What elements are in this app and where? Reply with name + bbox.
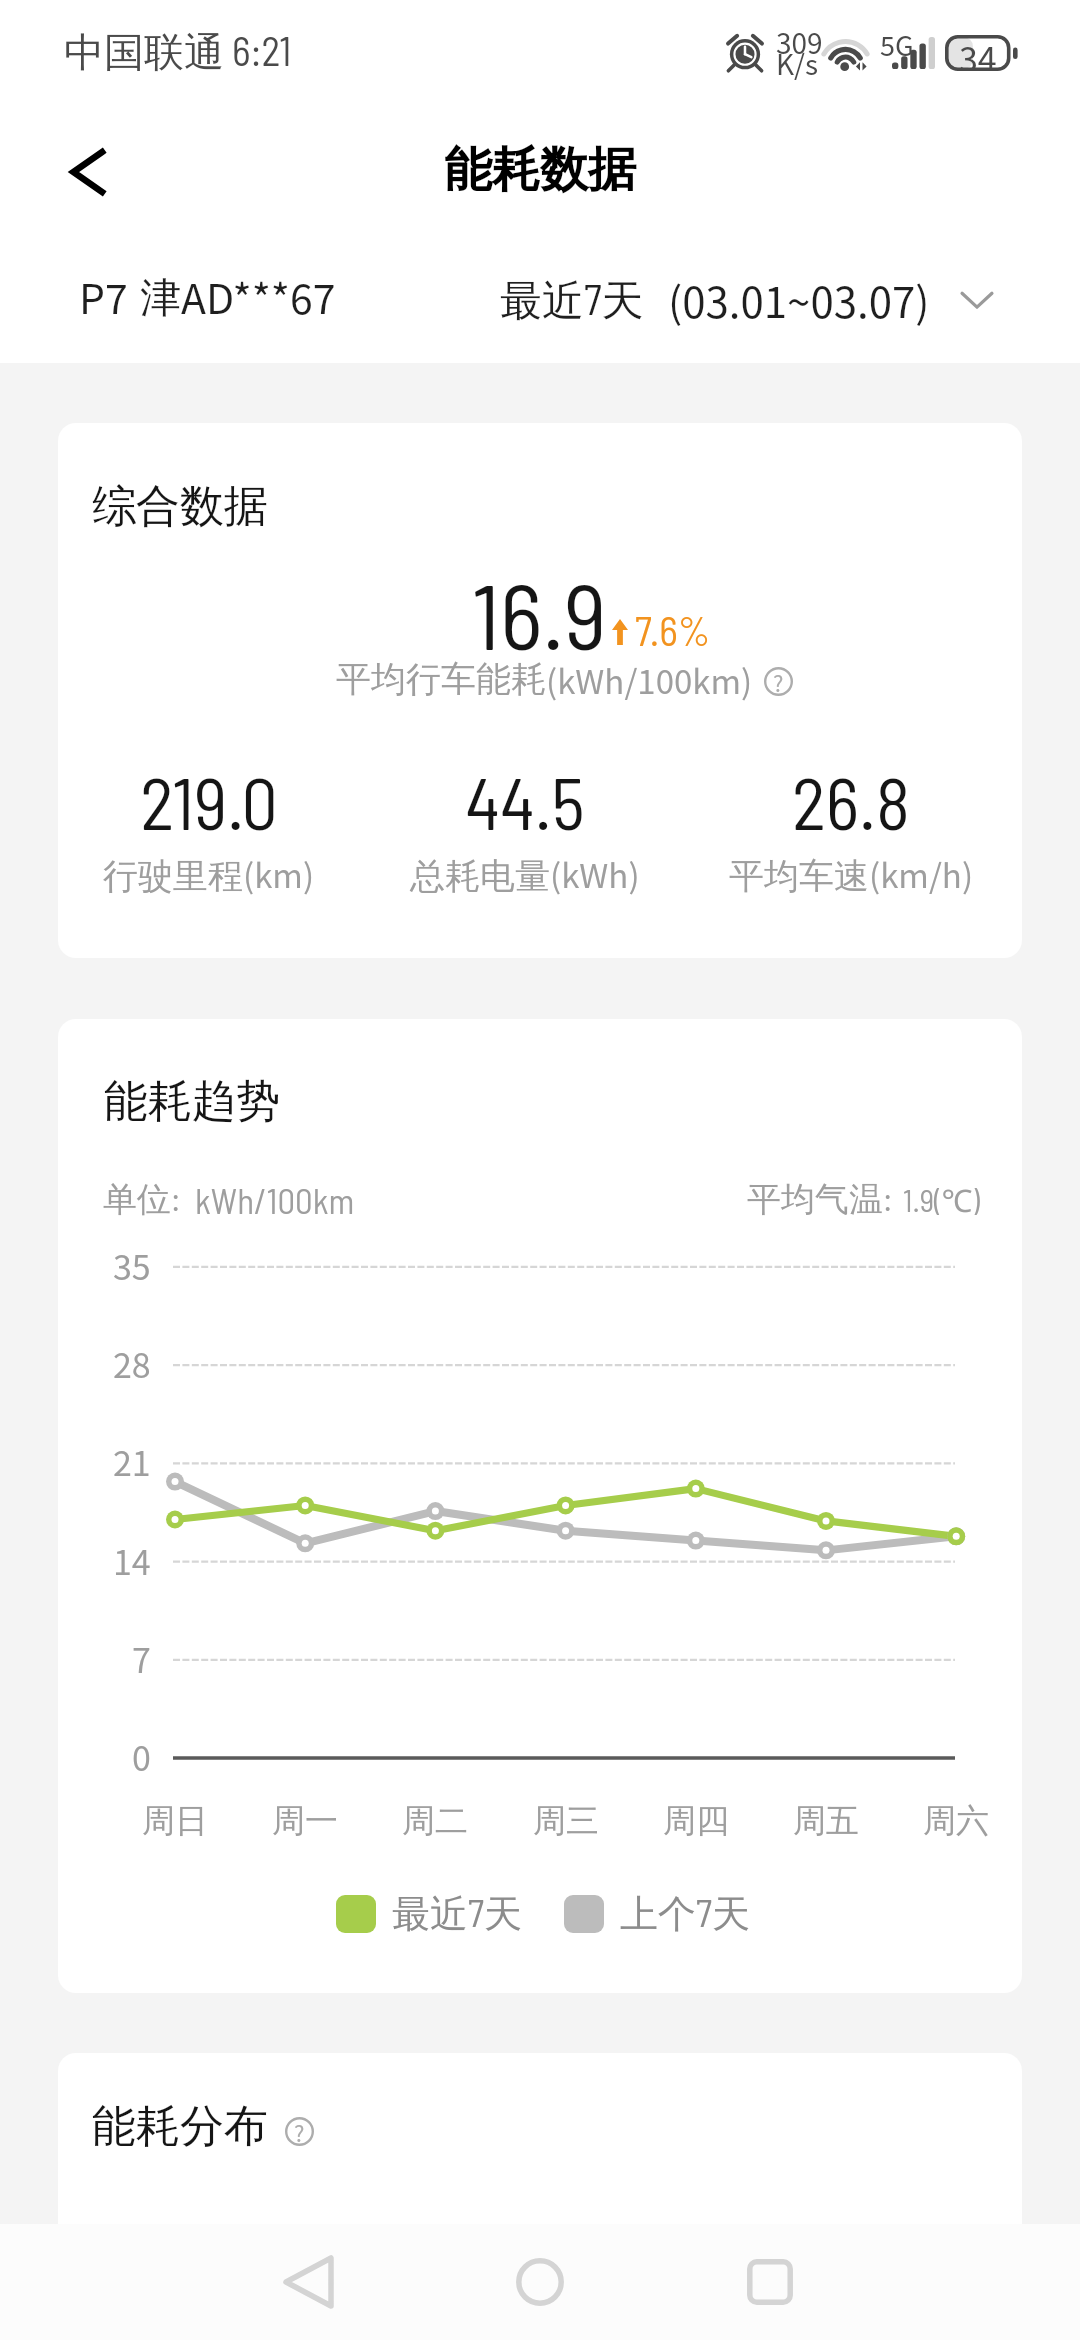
staticText: 周二	[402, 1800, 468, 1842]
staticText: 最近7天	[392, 1889, 522, 1938]
staticText: 26.8	[792, 758, 910, 844]
staticText: 21	[113, 1437, 151, 1486]
staticText: 35	[113, 1241, 151, 1290]
staticText: 219.0	[140, 758, 278, 844]
staticText: 1.9(℃)	[903, 1179, 980, 1221]
staticText: 能耗趋势	[104, 1074, 280, 1129]
staticText: 14	[113, 1536, 151, 1585]
staticText: 16.9	[472, 558, 607, 668]
staticText: 周六	[923, 1800, 989, 1842]
staticText: 周五	[793, 1800, 859, 1842]
button[interactable]: Back	[244, 2224, 374, 2340]
button[interactable]: 最近7天	[500, 269, 994, 330]
staticText: 周三	[533, 1800, 599, 1842]
staticText: 0	[132, 1732, 151, 1781]
staticText: ?	[773, 666, 784, 695]
staticText: 28	[113, 1339, 151, 1388]
staticText: 7	[132, 1634, 151, 1683]
button[interactable]: 能耗分布	[92, 2099, 314, 2154]
staticText: 周一	[272, 1800, 338, 1842]
staticText: 平均车速	[729, 854, 869, 898]
staticText: 上个7天	[620, 1889, 750, 1938]
staticText: ?	[294, 2116, 305, 2145]
staticText: (03.01~03.07)	[668, 269, 930, 330]
staticText: 总耗电量	[410, 854, 550, 898]
staticText: 单位:	[103, 1177, 181, 1221]
staticText: 中国联通 6:21	[64, 26, 292, 78]
staticText: 5G	[880, 25, 914, 64]
staticText: 7.6%	[635, 606, 711, 654]
staticText: 平均行车能耗	[336, 657, 546, 701]
staticText: 最近7天	[500, 273, 644, 327]
staticText: 34	[959, 33, 997, 69]
staticText: 能耗数据	[444, 140, 636, 200]
button[interactable]: Back	[58, 147, 116, 197]
button[interactable]: Recent apps	[705, 2224, 835, 2340]
staticText: kWh/100km	[195, 1179, 355, 1221]
staticText: 44.5	[465, 758, 585, 844]
staticText: K/s	[776, 43, 819, 84]
staticText: 行驶里程	[103, 854, 243, 898]
staticText: (kWh)	[550, 850, 640, 898]
staticText: AD***67	[181, 266, 336, 325]
staticText: P7	[79, 266, 128, 325]
staticText: (km/h)	[869, 850, 974, 898]
staticText: (km)	[243, 850, 315, 898]
staticText: 周四	[663, 1800, 729, 1842]
button[interactable]: 上个7天	[564, 1889, 750, 1938]
button[interactable]: Home	[475, 2224, 605, 2340]
staticText: 津	[140, 273, 181, 325]
staticText: 309	[776, 22, 823, 63]
staticText: 综合数据	[92, 479, 268, 534]
button[interactable]: 最近7天	[336, 1889, 522, 1938]
staticText: 能耗分布	[92, 2099, 268, 2154]
staticText: 周日	[142, 1800, 208, 1842]
staticText: (kWh/100km)	[546, 656, 753, 704]
staticText: 平均气温:	[747, 1177, 893, 1221]
